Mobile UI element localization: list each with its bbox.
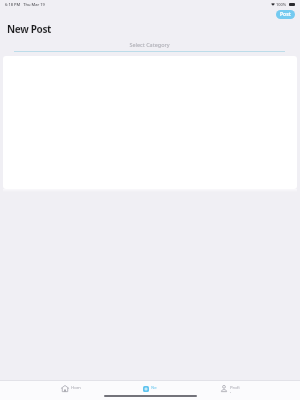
- staticText: 100%: [276, 2, 287, 7]
- staticText: Post: [280, 11, 291, 18]
- staticText: Home: [71, 384, 81, 393]
- staticText: 6:18 PM Thu Mar 19: [5, 2, 45, 7]
- button[interactable]: Profile: [206, 382, 254, 395]
- button[interactable]: New: [129, 382, 173, 395]
- staticText: New Post: [7, 22, 52, 36]
- staticText: Profile: [230, 384, 240, 393]
- button[interactable]: Select Category: [14, 41, 285, 52]
- staticText: Select Category: [14, 41, 285, 48]
- button[interactable]: Home: [47, 382, 95, 395]
- button[interactable]: Post: [276, 10, 295, 19]
- staticText: New: [151, 384, 159, 393]
